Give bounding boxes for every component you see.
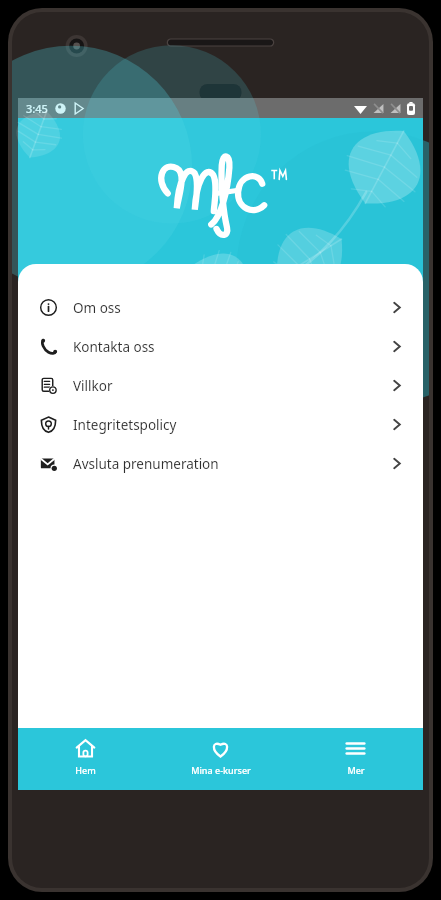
button[interactable]: Integritetspolicy <box>18 405 423 444</box>
button[interactable]: Hem <box>18 728 153 790</box>
staticText: 3:45 <box>26 101 48 116</box>
button[interactable]: Villkor <box>18 366 423 405</box>
button[interactable]: Mina e-kurser <box>153 728 288 790</box>
staticText: Villkor <box>73 377 113 395</box>
staticText: Integritetspolicy <box>73 416 177 434</box>
button[interactable]: Om oss <box>18 288 423 327</box>
staticText: Avsluta prenumeration <box>73 455 219 473</box>
staticText: Mina e-kurser <box>191 764 251 776</box>
button[interactable]: Mer <box>288 728 423 790</box>
staticText: Mer <box>347 764 365 776</box>
staticText: Kontakta oss <box>73 338 155 356</box>
staticText: Om oss <box>73 299 121 317</box>
staticText: Hem <box>75 764 96 776</box>
button[interactable]: Avsluta prenumeration <box>18 444 423 483</box>
button[interactable]: Kontakta oss <box>18 327 423 366</box>
